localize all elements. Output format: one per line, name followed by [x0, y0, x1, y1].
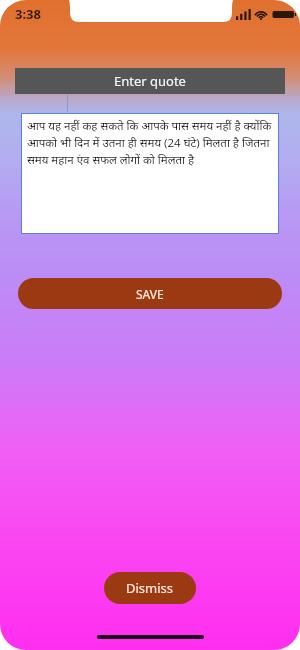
staticText: Enter quote [114, 72, 186, 90]
button[interactable]: SAVE [18, 278, 282, 309]
other: Home indicator [97, 635, 204, 639]
staticText: Dismiss [126, 579, 174, 597]
staticText: SAVE [136, 286, 164, 302]
button[interactable]: Dismiss [104, 572, 196, 604]
staticText: 3:38 [15, 5, 41, 23]
button[interactable]: आप यह नहीं कह सकते कि आपके पास समय नहीं … [21, 113, 279, 234]
staticText: आप यह नहीं कह सकते कि आपके पास समय नहीं … [27, 118, 274, 168]
button[interactable]: Enter quote [15, 68, 285, 94]
